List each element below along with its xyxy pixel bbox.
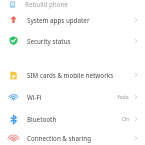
staticText: Bluetooth [27,115,57,123]
staticText: Rebuild phone [25,0,68,8]
button[interactable]: Security status [0,30,145,51]
button[interactable]: Wi-Fi [0,86,145,108]
staticText: Connection & sharing [27,134,91,142]
button[interactable]: SIM cards & mobile networks [0,64,145,86]
staticText: Wi-Fi [27,93,42,101]
staticText: Security status [27,37,71,45]
staticText: System apps updater [27,16,90,24]
button[interactable]: Bluetooth [0,108,145,130]
button[interactable]: System apps updater [0,9,145,30]
staticText: On [122,116,129,123]
button[interactable]: Connection & sharing [0,130,145,145]
staticText: Yoda [117,94,129,101]
staticText: SIM cards & mobile networks [27,71,114,79]
button[interactable]: Rebuild phone [0,0,145,9]
